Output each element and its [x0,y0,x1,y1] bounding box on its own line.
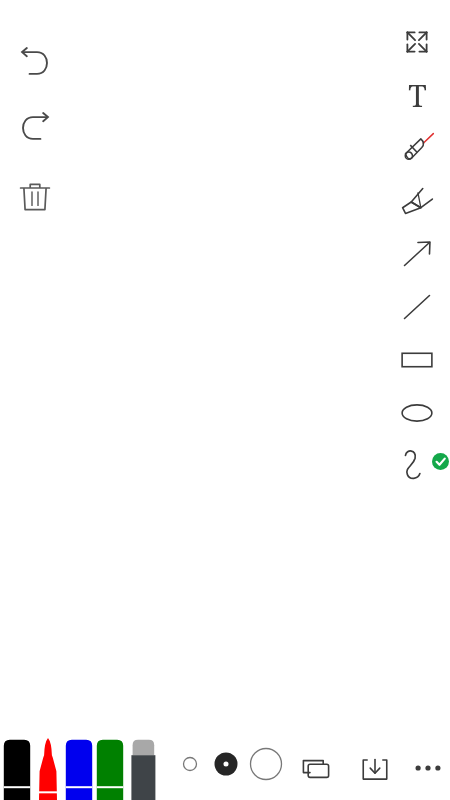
button[interactable]: Ellipse [393,389,441,437]
button[interactable]: Highlighter [393,177,441,225]
button[interactable]: Pen [393,124,441,172]
button[interactable]: Thick stroke [246,744,286,784]
button[interactable]: More options [406,746,450,790]
button[interactable]: Arrow [393,230,441,278]
staticText: T [408,75,427,116]
button[interactable]: Blue pen [64,736,94,800]
button[interactable]: Save [352,746,398,792]
button[interactable]: T [393,71,441,119]
button[interactable]: Copy [293,746,339,792]
button[interactable]: Red marker [33,736,63,800]
button[interactable]: Thin stroke [170,744,210,784]
button[interactable]: Black pen [2,736,32,800]
button[interactable]: Line [393,283,441,331]
button[interactable]: Medium stroke [206,744,246,784]
button[interactable]: Green pen [95,736,125,800]
button[interactable]: Undo [10,38,60,88]
button[interactable]: Freehand [393,440,441,488]
button[interactable]: Delete [10,172,60,222]
button[interactable]: Rectangle [393,336,441,384]
button[interactable]: Fullscreen [393,18,441,66]
button[interactable]: Redo [10,103,60,153]
button[interactable]: Eraser [126,736,156,800]
